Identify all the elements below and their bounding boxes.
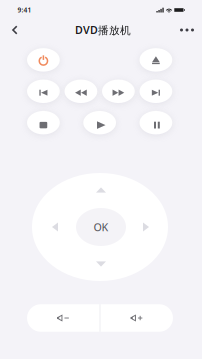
staticText: OK [93,220,108,234]
button[interactable]: Pause [139,111,172,134]
button[interactable]: Power [27,48,60,72]
staticText: 9:41 [17,6,31,14]
button[interactable]: Up [96,187,106,193]
button[interactable]: Volume up [100,304,173,332]
button[interactable]: Stop [27,111,60,134]
button[interactable]: Previous [27,79,60,103]
button[interactable]: Rewind [64,79,97,103]
button[interactable]: OK [76,208,126,246]
button[interactable]: Next [139,79,172,103]
button[interactable]: Down [96,261,106,267]
button[interactable]: More [174,18,200,42]
button[interactable]: Play [83,111,116,134]
button[interactable]: Eject [139,48,172,72]
button[interactable]: Right [143,222,149,231]
button[interactable]: Left [52,222,58,231]
button[interactable]: Fast forward [102,79,135,103]
button[interactable]: Volume down [27,304,99,332]
button[interactable]: Back [2,17,28,43]
staticText: DVD播放机 [75,23,131,37]
